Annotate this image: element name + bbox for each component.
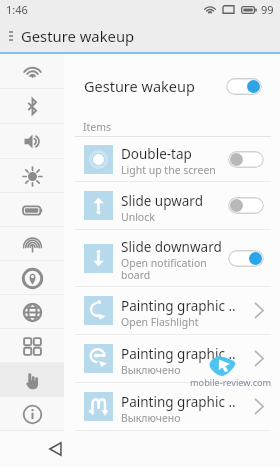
button[interactable]: bt bbox=[0, 89, 64, 124]
staticText: Выключено bbox=[121, 411, 181, 425]
button[interactable]: loc bbox=[0, 261, 64, 295]
staticText: 99 bbox=[261, 2, 274, 17]
staticText: Slide upward bbox=[121, 192, 203, 210]
staticText: Double-tap bbox=[121, 145, 192, 163]
button[interactable]: Painting graphic .. bbox=[64, 335, 280, 382]
staticText: Light up the screen bbox=[121, 163, 216, 177]
button[interactable]: Painting graphic .. bbox=[64, 383, 280, 430]
button[interactable]: Menu bbox=[0, 19, 21, 52]
staticText: Open notification board bbox=[121, 256, 207, 282]
button[interactable]: finger bbox=[0, 227, 64, 261]
button[interactable]: Slide downward bbox=[64, 230, 280, 286]
staticText: Slide downward bbox=[121, 238, 222, 256]
button[interactable]: info bbox=[0, 397, 64, 431]
button[interactable]: globe bbox=[0, 295, 64, 329]
staticText: Painting graphic .. bbox=[121, 345, 236, 363]
staticText: Painting graphic .. bbox=[121, 393, 236, 411]
button[interactable]: Toggle bbox=[228, 197, 264, 214]
button[interactable]: Slide upward bbox=[64, 182, 280, 229]
button[interactable]: Toggle bbox=[228, 151, 264, 168]
button[interactable]: Gesture wakeup bbox=[64, 54, 280, 118]
staticText: Items bbox=[83, 120, 112, 134]
button[interactable]: Painting graphic .. bbox=[64, 287, 280, 334]
staticText: Gesture wakeup bbox=[21, 26, 135, 46]
button[interactable]: vol bbox=[0, 124, 64, 159]
staticText: Open Flashlight bbox=[121, 315, 199, 329]
staticText: Выключено bbox=[121, 363, 181, 377]
button[interactable]: grid bbox=[0, 329, 64, 363]
button[interactable]: bright bbox=[0, 159, 64, 193]
button[interactable]: Double-tap bbox=[64, 137, 280, 181]
button[interactable]: hand bbox=[0, 363, 64, 397]
staticText: mobile-review.com bbox=[190, 376, 272, 389]
staticText: Unlock bbox=[121, 210, 155, 224]
button[interactable]: wifi bbox=[0, 54, 64, 89]
button[interactable]: Toggle bbox=[226, 78, 262, 95]
button[interactable]: Toggle bbox=[228, 250, 264, 267]
button[interactable]: Back bbox=[41, 435, 69, 463]
button[interactable]: batt bbox=[0, 193, 64, 227]
staticText: Painting graphic .. bbox=[121, 297, 236, 315]
staticText: 1:46 bbox=[6, 2, 28, 17]
staticText: Gesture wakeup bbox=[84, 76, 195, 96]
